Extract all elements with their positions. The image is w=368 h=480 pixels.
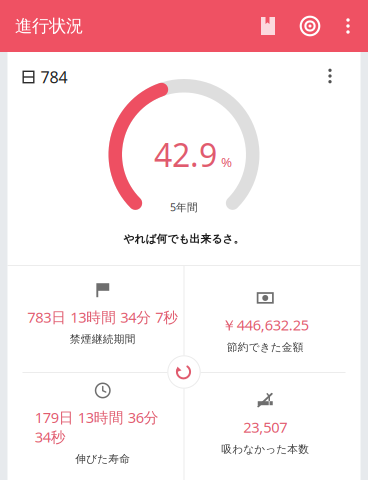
staticText: 784: [40, 66, 67, 88]
staticText: 吸わなかった本数: [221, 443, 309, 456]
staticText: ￥446,632.25: [222, 315, 309, 335]
staticText: やれば何でも出来るさ。: [123, 232, 244, 245]
staticText: 23,507: [243, 417, 287, 437]
button[interactable]: Card options: [313, 59, 347, 93]
staticText: 禁煙継続期間: [70, 333, 136, 346]
staticText: 節約できた金額: [227, 341, 304, 354]
staticText: 5年間: [170, 200, 198, 214]
button[interactable]: More options: [332, 0, 364, 52]
staticText: %: [221, 153, 232, 171]
staticText: 進行状況: [15, 15, 83, 37]
staticText: 783日 13時間 34分 7秒: [27, 307, 178, 327]
staticText: 伸びた寿命: [75, 452, 130, 465]
button[interactable]: Diary: [248, 0, 288, 52]
staticText: 179日 13時間 36分 34秒: [35, 407, 159, 446]
button[interactable]: Reset: [167, 355, 201, 389]
staticText: 42.9: [154, 133, 217, 176]
button[interactable]: Goals: [288, 0, 332, 52]
